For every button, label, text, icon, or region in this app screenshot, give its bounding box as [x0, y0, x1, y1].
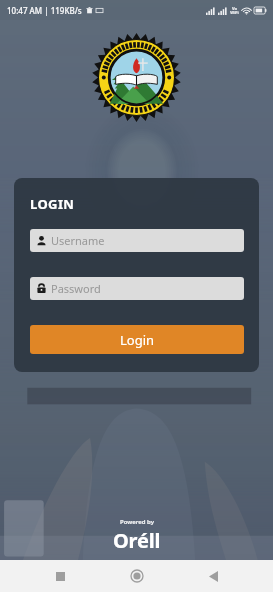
staticText: Password	[51, 281, 101, 296]
staticText: Vo WiFi	[230, 6, 239, 15]
staticText: 10:47 AM | 119KB/s	[7, 5, 82, 16]
button[interactable]: Username	[30, 229, 244, 252]
button[interactable]: Recent apps	[44, 560, 76, 592]
button[interactable]: Back	[197, 560, 229, 592]
button[interactable]: Password	[30, 277, 244, 300]
staticText: Login	[120, 331, 155, 349]
staticText: Powered by	[120, 518, 154, 526]
staticText: Oréll	[113, 527, 161, 554]
button[interactable]: Login	[30, 325, 244, 354]
staticText: Username	[51, 233, 105, 248]
staticText: LOGIN	[30, 195, 75, 213]
button[interactable]: Home	[121, 560, 153, 592]
